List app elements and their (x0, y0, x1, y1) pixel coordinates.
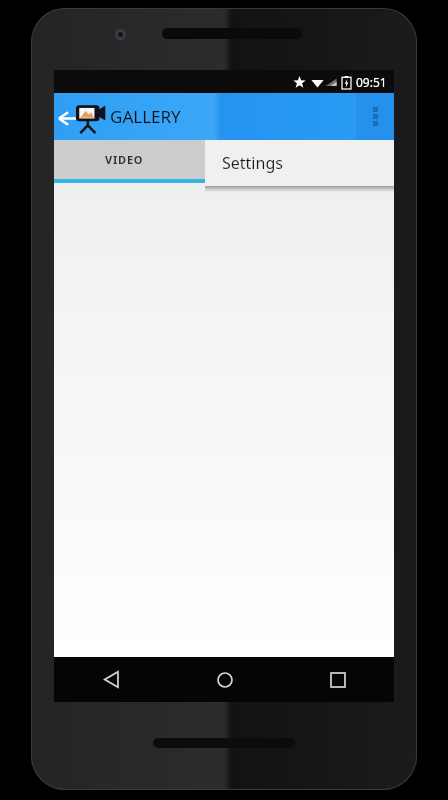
staticText: Settings (222, 152, 283, 174)
button[interactable]: VIDEO (54, 140, 194, 179)
button[interactable]: Recent apps (281, 657, 394, 702)
staticText: VIDEO (105, 152, 144, 167)
button[interactable]: More options (356, 93, 394, 140)
staticText: GALLERY (110, 105, 181, 128)
button[interactable]: GALLERY (54, 93, 181, 140)
staticText: 09:51 (356, 74, 387, 90)
button[interactable]: Home (168, 657, 281, 702)
button[interactable]: Back (54, 657, 168, 702)
button[interactable]: Settings (205, 140, 394, 186)
